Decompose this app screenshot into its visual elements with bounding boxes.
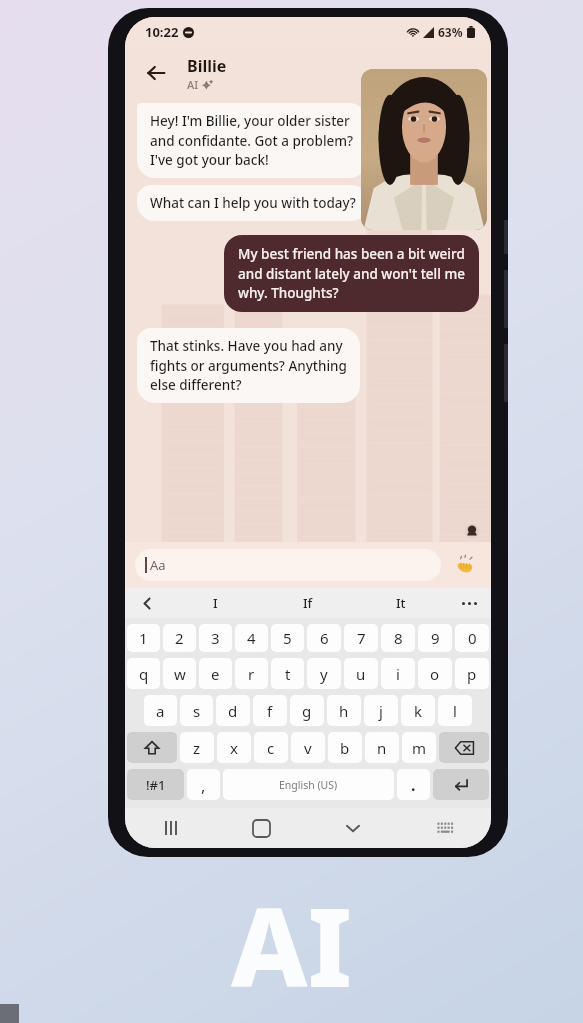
staticText: 5 bbox=[283, 628, 292, 648]
button[interactable]: x bbox=[217, 732, 251, 763]
button[interactable]: Back bbox=[139, 56, 173, 90]
button[interactable]: h bbox=[327, 695, 361, 726]
button[interactable]: , bbox=[187, 769, 220, 800]
button[interactable]: m bbox=[402, 732, 436, 763]
staticText: 63% bbox=[438, 24, 463, 40]
button[interactable]: y bbox=[307, 658, 341, 689]
button[interactable]: 0 bbox=[455, 624, 489, 652]
button[interactable]: e bbox=[199, 658, 232, 689]
staticText: 10:22 bbox=[145, 23, 179, 41]
button[interactable]: Enter bbox=[433, 769, 489, 800]
button[interactable]: 9 bbox=[418, 624, 452, 652]
staticText: m bbox=[412, 738, 427, 758]
staticText: 7 bbox=[357, 628, 366, 648]
button[interactable]: j bbox=[364, 695, 398, 726]
button[interactable]: Hey! I'm Billie, your older sister and c… bbox=[137, 103, 367, 178]
button[interactable]: That stinks. Have you had any fights or … bbox=[137, 328, 360, 403]
staticText: 6 bbox=[320, 628, 329, 648]
staticText: k bbox=[414, 701, 423, 721]
button[interactable]: b bbox=[328, 732, 362, 763]
button[interactable]: More options bbox=[447, 588, 491, 618]
button[interactable]: Shift bbox=[127, 732, 177, 763]
staticText: z bbox=[193, 738, 201, 758]
button[interactable]: s bbox=[180, 695, 213, 726]
staticText: o bbox=[430, 664, 440, 684]
button[interactable]: Change keyboard bbox=[399, 808, 491, 848]
button[interactable]: q bbox=[127, 658, 160, 689]
button[interactable]: Recent apps bbox=[125, 808, 216, 848]
staticText: Aa bbox=[150, 556, 166, 574]
staticText: 2 bbox=[175, 628, 184, 648]
staticText: 4 bbox=[247, 628, 256, 648]
button[interactable]: 1 bbox=[127, 624, 160, 652]
button[interactable]: Previous suggestions bbox=[125, 588, 169, 618]
staticText: b bbox=[340, 738, 350, 758]
staticText: j bbox=[379, 701, 383, 721]
button[interactable]: f bbox=[253, 695, 287, 726]
button[interactable]: Backspace bbox=[439, 732, 489, 763]
button[interactable]: If bbox=[261, 588, 354, 618]
staticText: 9 bbox=[431, 628, 440, 648]
button[interactable]: I bbox=[169, 588, 261, 618]
staticText: AI bbox=[0, 872, 583, 1019]
button[interactable]: 3 bbox=[199, 624, 232, 652]
button[interactable]: Billie bbox=[187, 55, 227, 92]
button[interactable]: a bbox=[144, 695, 177, 726]
button[interactable]: Aa bbox=[135, 549, 441, 581]
button[interactable]: 5 bbox=[271, 624, 304, 652]
button[interactable]: Billie avatar bbox=[361, 69, 487, 230]
button[interactable]: English (US) bbox=[223, 769, 394, 800]
button[interactable]: 4 bbox=[235, 624, 268, 652]
staticText: q bbox=[139, 664, 149, 684]
staticText: . bbox=[411, 774, 416, 796]
button[interactable]: 8 bbox=[381, 624, 415, 652]
button[interactable]: g bbox=[290, 695, 324, 726]
staticText: 1 bbox=[139, 628, 148, 648]
button[interactable]: o bbox=[418, 658, 452, 689]
staticText: What can I help you with today? bbox=[150, 194, 356, 212]
staticText: I bbox=[213, 594, 218, 612]
button[interactable]: 7 bbox=[344, 624, 378, 652]
button[interactable]: Hide keyboard bbox=[307, 808, 399, 848]
staticText: Billie bbox=[187, 55, 227, 77]
button[interactable]: i bbox=[381, 658, 415, 689]
staticText: u bbox=[356, 664, 366, 684]
button[interactable]: n bbox=[365, 732, 399, 763]
button[interactable]: z bbox=[180, 732, 214, 763]
button[interactable]: What can I help you with today? bbox=[137, 185, 369, 221]
button[interactable]: My best friend has been a bit weird and … bbox=[224, 235, 479, 312]
staticText: a bbox=[156, 701, 165, 721]
staticText: 0 bbox=[468, 628, 477, 648]
staticText: i bbox=[396, 664, 400, 684]
button[interactable]: l bbox=[438, 695, 472, 726]
button[interactable]: w bbox=[163, 658, 196, 689]
staticText: d bbox=[228, 701, 238, 721]
button[interactable]: 6 bbox=[307, 624, 341, 652]
staticText: r bbox=[248, 664, 255, 684]
staticText: c bbox=[267, 738, 275, 758]
button[interactable]: It bbox=[354, 588, 447, 618]
staticText: , bbox=[201, 775, 206, 797]
staticText: v bbox=[304, 738, 312, 758]
button[interactable]: k bbox=[401, 695, 435, 726]
staticText: f bbox=[267, 701, 273, 721]
button[interactable]: u bbox=[344, 658, 378, 689]
button[interactable]: c bbox=[254, 732, 288, 763]
staticText: x bbox=[230, 738, 238, 758]
button[interactable]: r bbox=[235, 658, 268, 689]
staticText: Hey! I'm Billie, your older sister and c… bbox=[150, 112, 354, 169]
staticText: y bbox=[320, 664, 328, 684]
button[interactable]: Home bbox=[216, 808, 307, 848]
button[interactable]: 2 bbox=[163, 624, 196, 652]
staticText: 3 bbox=[211, 628, 220, 648]
staticText: l bbox=[453, 701, 457, 721]
button[interactable]: d bbox=[216, 695, 250, 726]
button[interactable]: p bbox=[455, 658, 489, 689]
button[interactable]: !#1 bbox=[127, 769, 184, 800]
staticText: My best friend has been a bit weird and … bbox=[238, 245, 465, 302]
button[interactable]: t bbox=[271, 658, 304, 689]
button[interactable]: Send clap reaction bbox=[449, 549, 481, 581]
staticText: 8 bbox=[394, 628, 403, 648]
button[interactable]: . bbox=[397, 769, 430, 800]
button[interactable]: v bbox=[291, 732, 325, 763]
